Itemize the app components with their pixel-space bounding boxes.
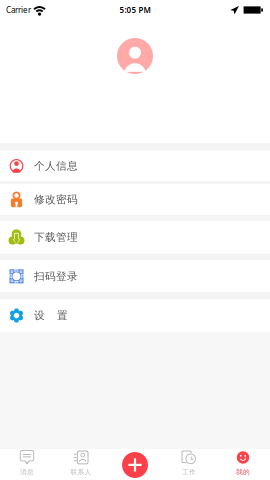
button[interactable]: 个人信息 xyxy=(0,150,270,181)
staticText: 工作 xyxy=(182,468,196,476)
button[interactable]: 设 置 xyxy=(0,299,270,332)
button[interactable]: 下载管理 xyxy=(0,221,270,254)
staticText: 5:05 PM xyxy=(119,5,150,15)
button[interactable]: 工作 xyxy=(162,448,216,480)
staticText: 个人信息 xyxy=(34,159,78,172)
staticText: 联系人 xyxy=(70,468,91,476)
staticText: 扫码登录 xyxy=(34,270,78,283)
staticText: 我的 xyxy=(236,468,250,476)
staticText: 修改密码 xyxy=(34,193,78,206)
staticText: Carrier xyxy=(6,5,31,15)
staticText: 消息 xyxy=(20,468,34,476)
staticText: 设 置 xyxy=(34,309,68,322)
staticText: 下载管理 xyxy=(34,231,78,244)
button[interactable]: 我的 xyxy=(216,448,270,480)
button[interactable]: 消息 xyxy=(0,448,54,480)
button[interactable]: 联系人 xyxy=(54,448,108,480)
button[interactable]: 修改密码 xyxy=(0,184,270,215)
button[interactable]: 扫码登录 xyxy=(0,260,270,292)
button[interactable]: New xyxy=(122,452,148,478)
